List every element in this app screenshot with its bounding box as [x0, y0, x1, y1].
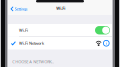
staticText: i	[106, 41, 107, 46]
button[interactable]: Wi-Fi Network	[8, 37, 112, 49]
button[interactable]: Wi-Fi	[8, 24, 112, 36]
staticText: Wi-Fi Network	[19, 41, 44, 46]
button[interactable]: Settings	[8, 1, 30, 13]
staticText: Wi-Fi	[19, 28, 28, 33]
staticText: CHOOSE A NETWORK...	[12, 59, 54, 64]
staticText: Wi-Fi	[56, 6, 65, 11]
staticText: Settings	[15, 6, 28, 11]
